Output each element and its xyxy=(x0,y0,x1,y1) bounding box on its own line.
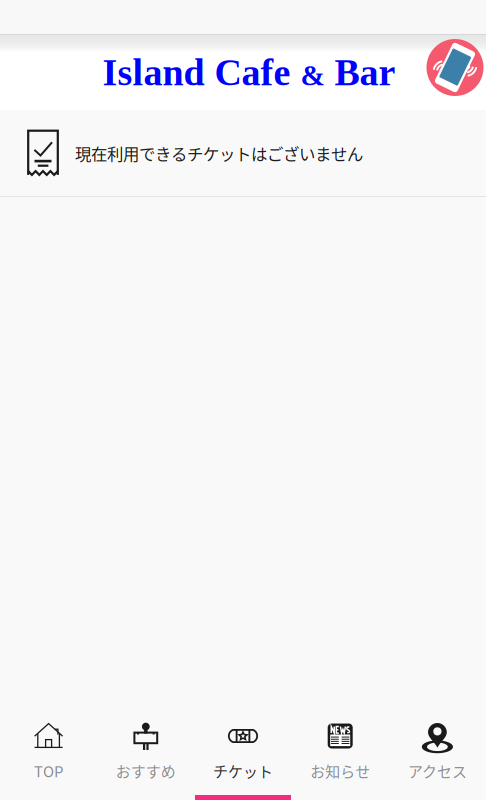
staticText: チケット xyxy=(213,760,273,782)
staticText: おすすめ xyxy=(116,760,176,782)
button[interactable]: アクセス xyxy=(389,700,486,800)
staticText: お知らせ xyxy=(310,760,370,782)
button[interactable]: おすすめ xyxy=(97,700,194,800)
staticText: アクセス xyxy=(408,760,467,782)
staticText: Island Cafe & Bar xyxy=(102,52,395,93)
button[interactable]: チケット xyxy=(194,700,292,800)
staticText: 現在利用できるチケットはございません xyxy=(75,141,363,165)
button[interactable]: TOP xyxy=(0,700,97,800)
staticText: TOP xyxy=(34,760,63,782)
button[interactable]: お知らせ xyxy=(292,700,389,800)
